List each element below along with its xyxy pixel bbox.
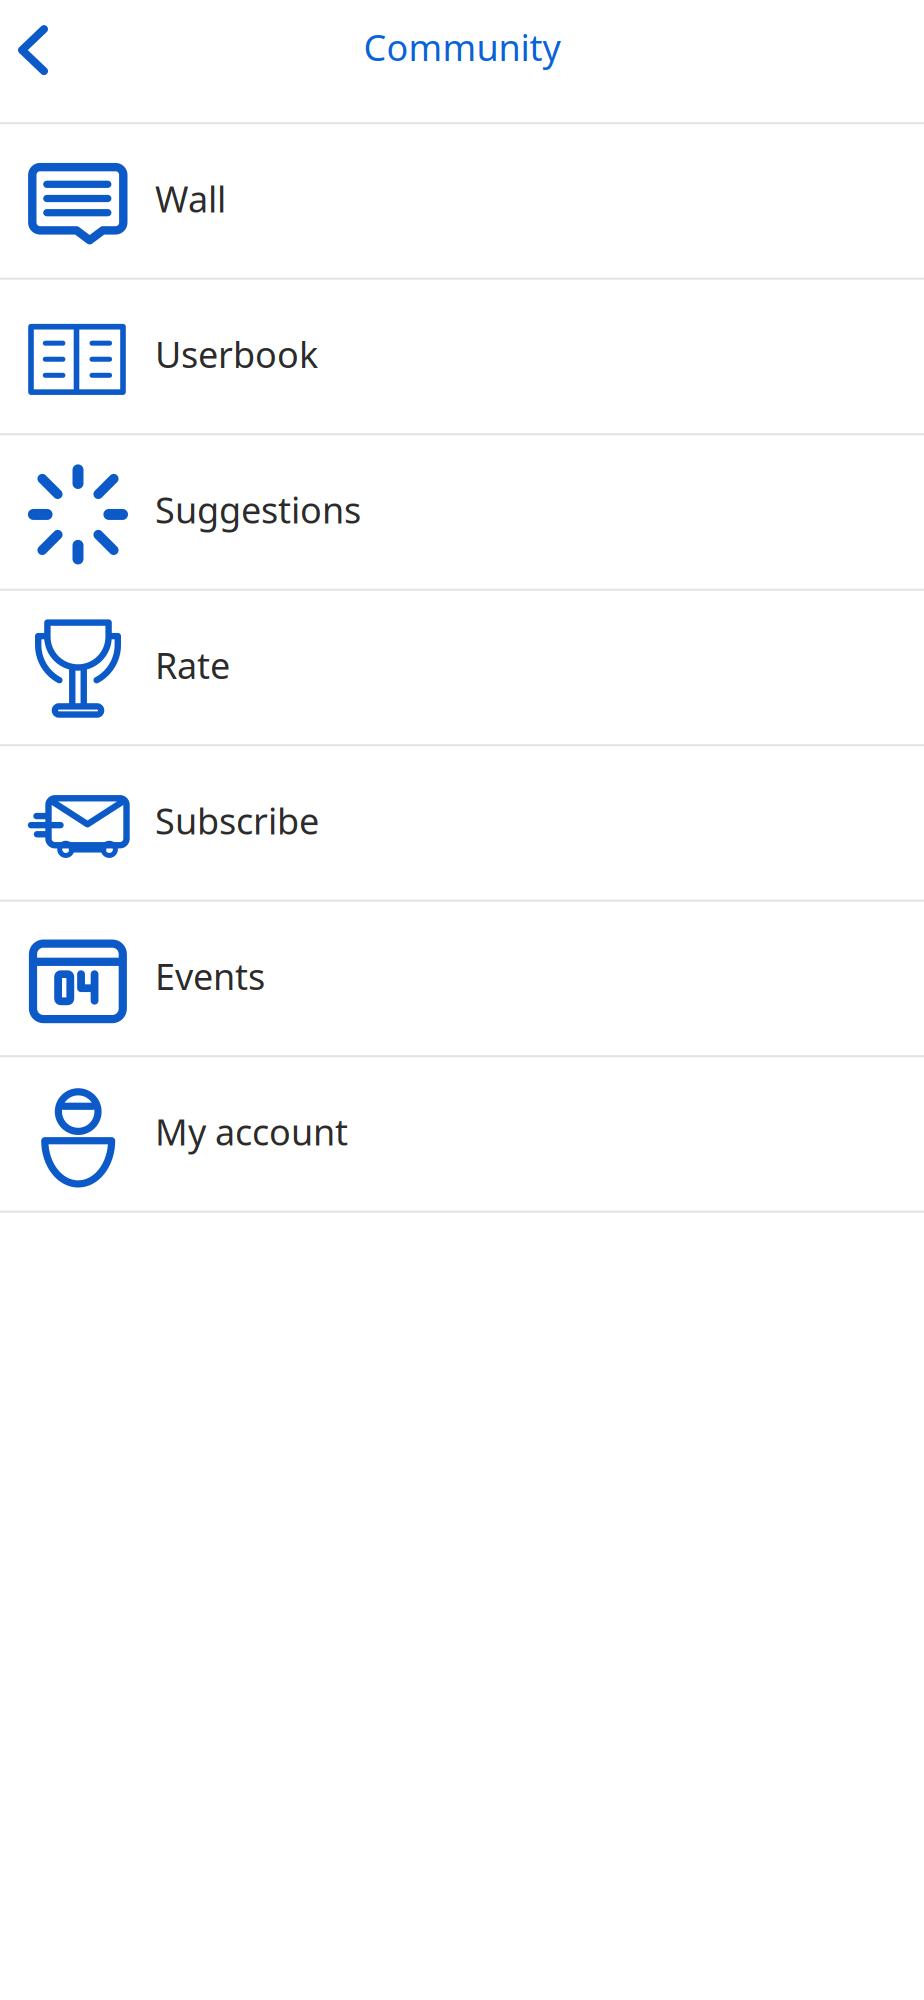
button[interactable]: Back (0, 6, 74, 116)
button[interactable]: Rate (0, 591, 924, 746)
staticText: Wall (155, 174, 226, 222)
staticText: Events (155, 952, 265, 1000)
button[interactable]: Events (0, 902, 924, 1057)
staticText: My account (155, 1107, 348, 1155)
staticText: Userbook (155, 330, 318, 378)
button[interactable]: Wall (0, 124, 924, 280)
button[interactable]: Userbook (0, 280, 924, 435)
staticText: Subscribe (155, 796, 319, 844)
staticText: Rate (155, 641, 230, 689)
staticText: Community (363, 23, 560, 71)
button[interactable]: Subscribe (0, 746, 924, 902)
button[interactable]: My account (0, 1057, 924, 1213)
button[interactable]: Suggestions (0, 435, 924, 591)
staticText: Suggestions (155, 485, 361, 533)
